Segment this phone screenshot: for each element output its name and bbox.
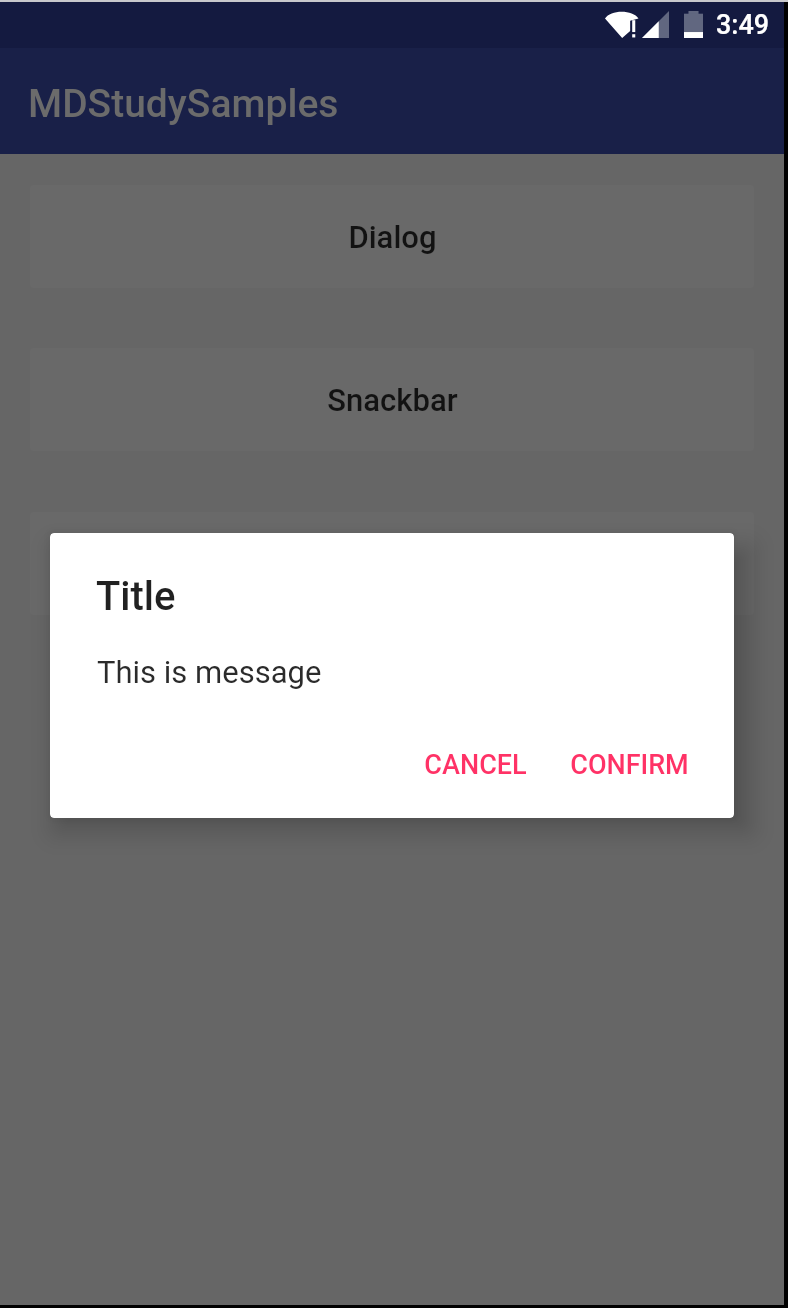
- other: Battery: [684, 11, 703, 38]
- button[interactable]: Snackbar: [30, 348, 754, 451]
- staticText: This is message: [97, 654, 322, 690]
- button[interactable]: [30, 512, 754, 615]
- staticText: CONFIRM: [570, 749, 689, 781]
- button[interactable]: CANCEL: [401, 735, 549, 795]
- staticText: MDStudySamples: [28, 81, 339, 127]
- staticText: Dialog: [348, 219, 437, 255]
- button[interactable]: CONFIRM: [547, 735, 711, 795]
- button[interactable]: Dialog: [30, 185, 754, 288]
- other: Wi-Fi, no internet: [605, 11, 639, 38]
- staticText: Snackbar: [327, 382, 458, 418]
- staticText: 3:49: [716, 9, 770, 41]
- staticText: Title: [96, 573, 176, 620]
- staticText: CANCEL: [424, 749, 527, 781]
- other: Mobile signal: [642, 11, 669, 38]
